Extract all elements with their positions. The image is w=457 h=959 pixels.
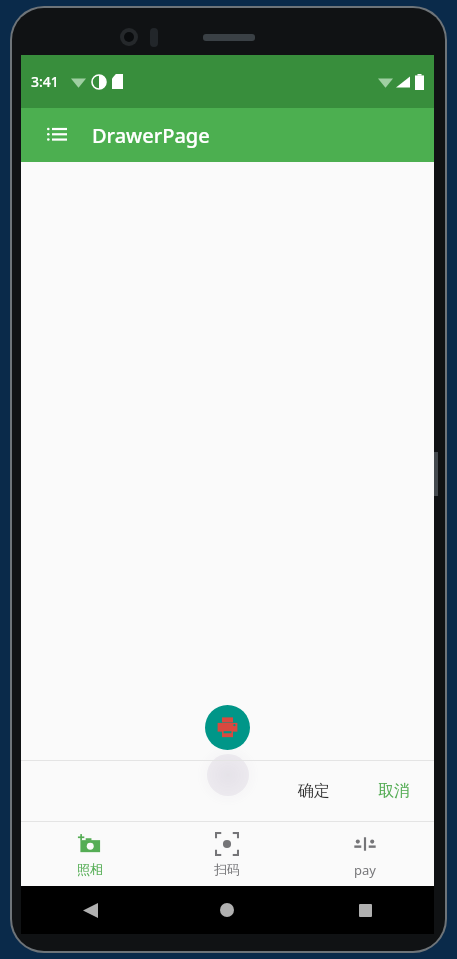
button[interactable]: Home [210, 893, 244, 927]
button[interactable]: 扫码 [158, 822, 296, 877]
button[interactable]: Print [205, 705, 250, 750]
button[interactable]: Back [73, 893, 107, 927]
button[interactable]: pay [296, 822, 434, 879]
button[interactable]: 取消 [368, 773, 420, 809]
staticText: 扫码 [214, 861, 240, 877]
staticText: 照相 [77, 861, 103, 877]
staticText: 取消 [378, 781, 410, 801]
staticText: DrawerPage [92, 122, 210, 149]
button[interactable]: Open navigation drawer [33, 111, 81, 159]
staticText: pay [354, 861, 376, 879]
staticText: 3:41 [31, 72, 59, 91]
button[interactable]: 照相 [21, 822, 158, 877]
button[interactable]: Recent apps [348, 893, 382, 927]
button[interactable]: 确定 [284, 773, 344, 809]
staticText: 确定 [298, 781, 330, 801]
